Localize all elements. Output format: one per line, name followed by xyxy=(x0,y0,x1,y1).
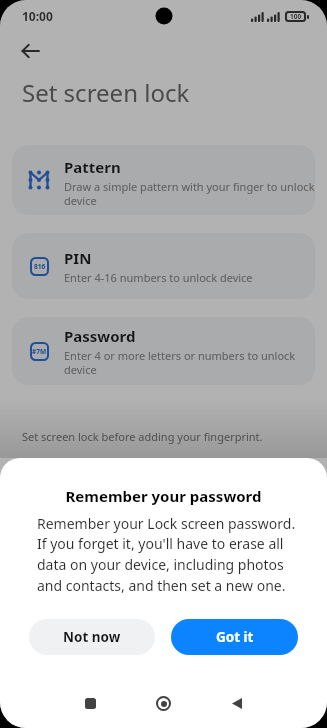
staticText: Draw a simple pattern with your finger t… xyxy=(64,179,306,208)
staticText: Got it xyxy=(216,628,254,646)
staticText: 100 xyxy=(290,12,302,21)
button[interactable]: 816 xyxy=(12,233,315,299)
staticText: PIN xyxy=(64,248,92,268)
staticText: Set screen lock xyxy=(22,76,190,109)
staticText: 816 xyxy=(34,262,46,271)
button[interactable]: Pattern xyxy=(12,145,315,215)
button[interactable] xyxy=(232,698,242,709)
button[interactable]: Not now xyxy=(29,619,155,655)
staticText: Remember your password xyxy=(0,486,327,506)
staticText: Pattern xyxy=(64,157,121,177)
button[interactable] xyxy=(85,698,96,709)
staticText: Enter 4 or more letters or numbers to un… xyxy=(64,348,296,377)
staticText: Password xyxy=(64,326,136,346)
button[interactable] xyxy=(22,40,48,62)
staticText: Enter 4-16 numbers to unlock device xyxy=(64,270,253,285)
button[interactable]: #7M xyxy=(12,317,315,385)
button[interactable] xyxy=(156,696,171,711)
staticText: Not now xyxy=(63,628,121,646)
button[interactable]: Got it xyxy=(171,619,298,655)
staticText: Set screen lock before adding your finge… xyxy=(22,429,263,444)
staticText: #7M xyxy=(32,347,47,356)
staticText: 10:00 xyxy=(22,8,53,24)
staticText: Remember your Lock screen password. If y… xyxy=(37,514,296,596)
